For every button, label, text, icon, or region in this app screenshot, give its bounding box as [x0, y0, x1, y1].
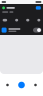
button[interactable]: Next [28, 74, 42, 96]
button[interactable]: Play [14, 74, 28, 96]
button[interactable]: Previous [0, 74, 14, 96]
